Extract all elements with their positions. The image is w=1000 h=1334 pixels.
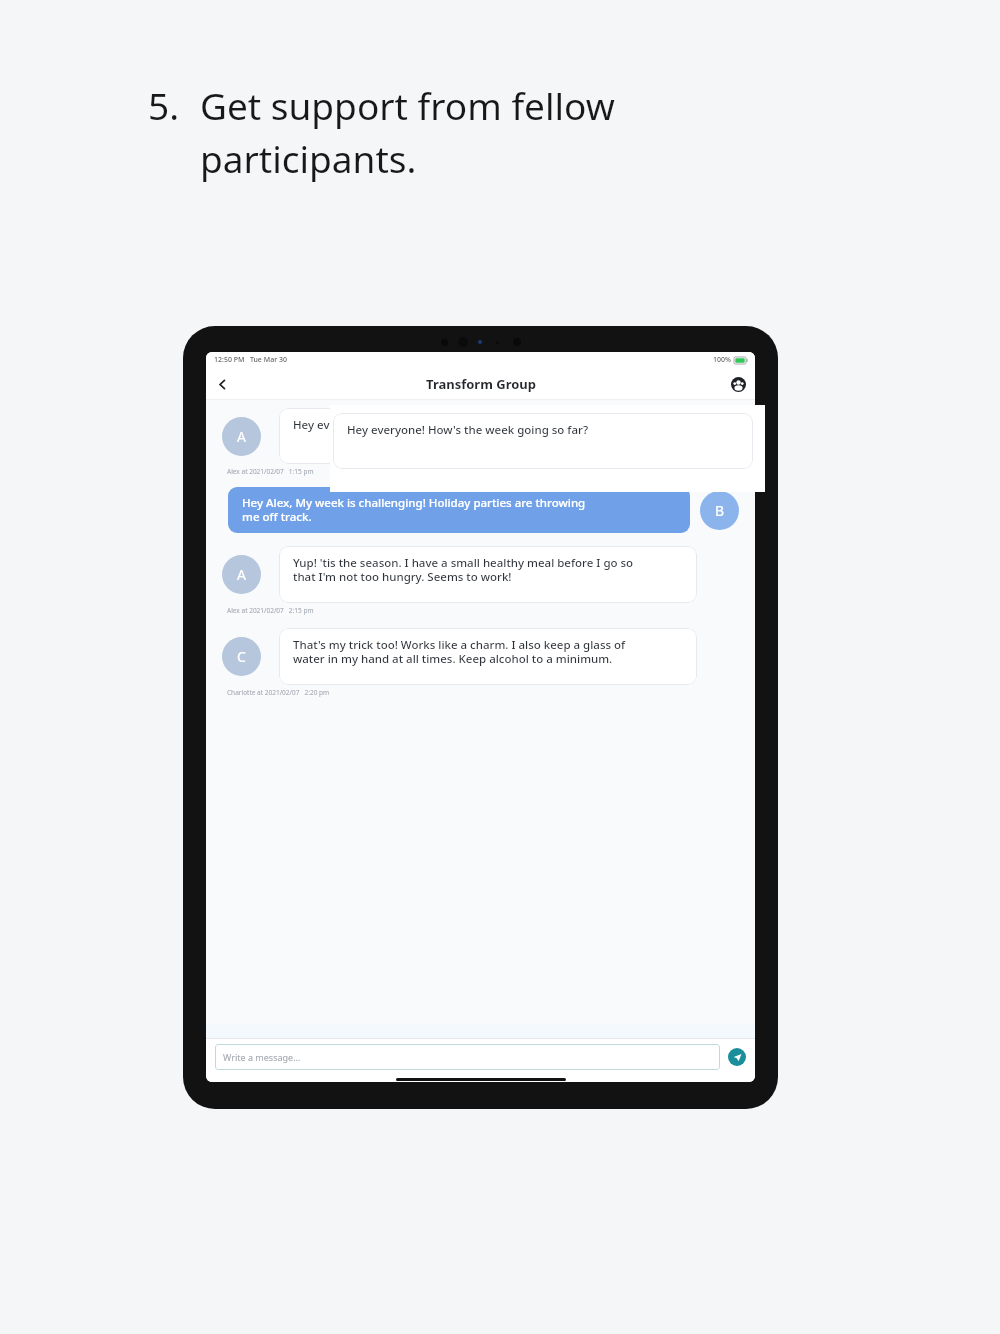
staticText: 5. bbox=[148, 80, 180, 130]
staticText: Hey Alex, My week is challenging! Holida… bbox=[242, 495, 586, 525]
staticText: 100% bbox=[713, 355, 731, 365]
staticText: Hey everyone! How's the week going so fa… bbox=[293, 417, 535, 433]
button[interactable]: Yup! 'tis the season. I have a small hea… bbox=[279, 546, 697, 603]
button[interactable]: Back bbox=[209, 371, 235, 397]
button[interactable]: Write a message... bbox=[215, 1044, 720, 1070]
button[interactable]: Hey everyone! How's the week going so fa… bbox=[279, 408, 699, 464]
button[interactable]: Hey Alex, My week is challenging! Holida… bbox=[228, 487, 690, 533]
staticText: Yup! 'tis the season. I have a small hea… bbox=[293, 555, 634, 585]
staticText: Hey everyone! How's the week going so fa… bbox=[347, 422, 589, 438]
staticText: 12:50 PM Tue Mar 30 bbox=[214, 355, 287, 365]
staticText: That's my trick too! Works like a charm.… bbox=[293, 637, 626, 667]
staticText: Charlotte at 2021/02/07 2:20 pm bbox=[227, 688, 330, 697]
staticText: Transform Group bbox=[426, 375, 536, 393]
button[interactable]: Send bbox=[728, 1048, 746, 1066]
staticText: B bbox=[715, 501, 725, 520]
staticText: C bbox=[237, 647, 246, 666]
staticText: A bbox=[237, 427, 246, 446]
staticText: Get support from fellow participants. bbox=[200, 80, 615, 184]
staticText: Alex at 2021/02/07 1:15 pm bbox=[227, 467, 314, 476]
staticText: Write a message... bbox=[223, 1051, 301, 1063]
button[interactable]: That's my trick too! Works like a charm.… bbox=[279, 628, 697, 685]
button[interactable]: Group members bbox=[726, 372, 750, 396]
staticText: A bbox=[237, 565, 246, 584]
staticText: Alex at 2021/02/07 2:15 pm bbox=[227, 606, 314, 615]
